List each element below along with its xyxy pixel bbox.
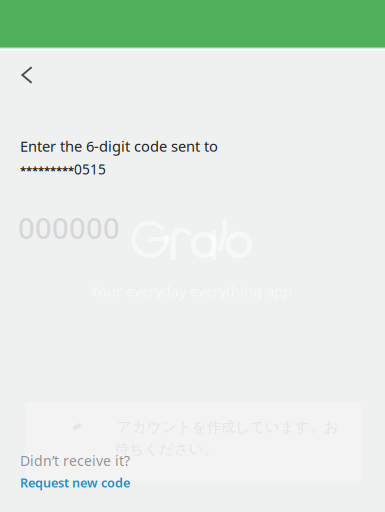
staticText: アカウントを作成しています。お <box>117 418 339 436</box>
staticText: *********0515 <box>20 160 106 178</box>
staticText: Didn’t receive it? <box>20 451 130 470</box>
staticText: 000000 <box>18 208 120 248</box>
button[interactable]: Back <box>5 53 49 97</box>
staticText: Request new code <box>20 474 130 491</box>
button[interactable]: Request new code <box>20 474 130 491</box>
staticText: Enter the 6-digit code sent to <box>20 136 218 156</box>
staticText: 待ちください。 <box>115 440 218 458</box>
